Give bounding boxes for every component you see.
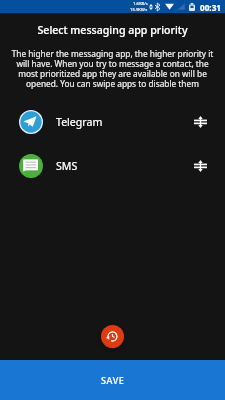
button[interactable]: SAVE [0, 360, 225, 400]
staticText: SMS [56, 159, 78, 173]
staticText: SAVE [101, 374, 125, 386]
staticText: Select messaging app priority [0, 23, 225, 37]
staticText: 1.6KB/s [133, 1, 148, 7]
staticText: Telegram [56, 115, 103, 129]
button[interactable]: Reorder [192, 114, 208, 130]
staticText: 00:31 [200, 2, 222, 13]
button[interactable]: SMS [0, 144, 225, 188]
button[interactable]: Reset to default [101, 325, 124, 348]
button[interactable]: Reorder [192, 158, 208, 174]
button[interactable]: Telegram [0, 100, 225, 144]
staticText: 15.9KB/s [130, 7, 148, 13]
staticText: The higher the messaging app, the higher… [10, 48, 215, 89]
